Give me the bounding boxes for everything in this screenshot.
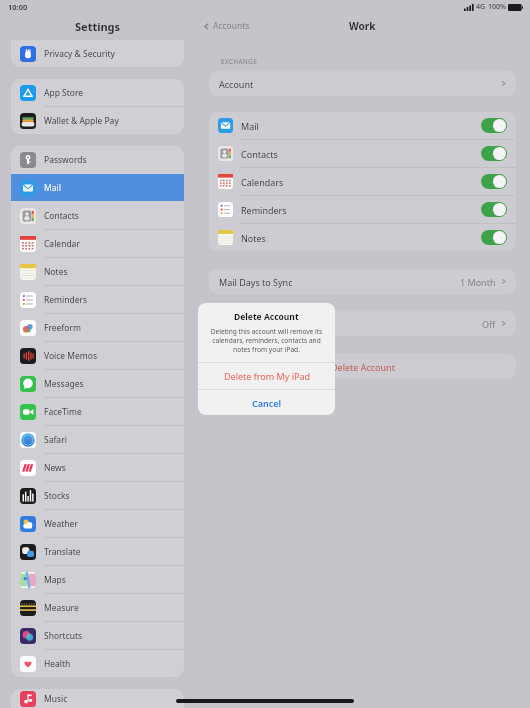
staticText: 1 Month bbox=[460, 276, 496, 288]
button[interactable]: Safari bbox=[11, 426, 184, 453]
staticText: Notes bbox=[44, 266, 68, 278]
button[interactable]: Reminders bbox=[209, 196, 516, 223]
button[interactable]: Wallet & Apple Pay bbox=[11, 107, 184, 134]
staticText: 100% bbox=[488, 2, 506, 12]
button[interactable]: Contacts bbox=[11, 202, 184, 229]
staticText: Measure bbox=[44, 602, 79, 614]
button[interactable]: Messages bbox=[11, 370, 184, 397]
button[interactable]: Stocks bbox=[11, 482, 184, 509]
button[interactable]: Contacts bbox=[209, 140, 516, 167]
button[interactable]: App Store bbox=[11, 79, 184, 106]
staticText: Delete Account bbox=[331, 361, 395, 373]
button[interactable]: Account bbox=[209, 71, 516, 96]
button[interactable]: Contacts enabled bbox=[481, 146, 507, 161]
button[interactable]: Music bbox=[11, 689, 184, 708]
button[interactable]: Delete Account bbox=[209, 354, 516, 379]
staticText: Mail bbox=[44, 182, 61, 194]
staticText: Wallet & Apple Pay bbox=[44, 115, 119, 127]
staticText: Privacy & Security bbox=[44, 48, 115, 60]
staticText: Delete from My iPad bbox=[224, 370, 310, 382]
staticText: Cancel bbox=[252, 397, 282, 409]
staticText: Calendars bbox=[241, 176, 284, 188]
staticText: Voice Memos bbox=[44, 350, 98, 362]
button[interactable]: Cancel bbox=[198, 390, 335, 415]
staticText: Mail Days to Sync bbox=[219, 276, 293, 288]
staticText: Translate bbox=[44, 546, 81, 558]
button[interactable]: Voice Memos bbox=[11, 342, 184, 369]
button[interactable]: Shortcuts bbox=[11, 622, 184, 649]
button[interactable]: Reminders enabled bbox=[481, 202, 507, 217]
staticText: Settings bbox=[75, 19, 121, 34]
staticText: Passwords bbox=[44, 154, 87, 166]
staticText: News bbox=[44, 462, 66, 474]
button[interactable]: Calendar bbox=[11, 230, 184, 257]
button[interactable]: Passwords bbox=[11, 146, 184, 173]
button[interactable]: Health bbox=[11, 650, 184, 677]
button[interactable]: Privacy & Security bbox=[11, 40, 184, 67]
button[interactable]: Weather bbox=[11, 510, 184, 537]
button[interactable]: Mail bbox=[11, 174, 184, 201]
staticText: Health bbox=[44, 658, 71, 670]
button[interactable]: Notes bbox=[11, 258, 184, 285]
button[interactable]: Notes bbox=[209, 224, 516, 251]
button[interactable]: Calendars enabled bbox=[481, 174, 507, 189]
button[interactable]: Maps bbox=[11, 566, 184, 593]
staticText: Messages bbox=[44, 378, 84, 390]
button[interactable]: FaceTime bbox=[11, 398, 184, 425]
staticText: Notes bbox=[241, 232, 266, 244]
staticText: Contacts bbox=[241, 148, 278, 160]
staticText: Automatic Reply bbox=[219, 318, 288, 330]
button[interactable]: Mail bbox=[209, 112, 516, 139]
staticText: EXCHANGE bbox=[221, 57, 258, 66]
button[interactable]: Measure bbox=[11, 594, 184, 621]
staticText: Deleting this account will remove its ca… bbox=[207, 327, 326, 354]
button[interactable]: Accounts bbox=[202, 20, 250, 32]
staticText: Accounts bbox=[213, 20, 250, 32]
button[interactable]: Mail Days to Sync bbox=[209, 269, 516, 294]
staticText: Contacts bbox=[44, 210, 79, 222]
staticText: Off bbox=[482, 318, 496, 330]
staticText: 10:00 bbox=[8, 2, 28, 12]
staticText: Reminders bbox=[241, 204, 287, 216]
staticText: Stocks bbox=[44, 490, 70, 502]
staticText: Delete Account bbox=[234, 311, 299, 323]
staticText: App Store bbox=[44, 87, 84, 99]
button[interactable]: Notes enabled bbox=[481, 230, 507, 245]
staticText: FaceTime bbox=[44, 406, 82, 418]
button[interactable]: Freeform bbox=[11, 314, 184, 341]
staticText: Safari bbox=[44, 434, 67, 446]
staticText: Reminders bbox=[44, 294, 88, 306]
staticText: Account bbox=[219, 78, 254, 90]
staticText: Music bbox=[44, 693, 68, 705]
button[interactable]: Translate bbox=[11, 538, 184, 565]
button[interactable]: Delete from My iPad bbox=[198, 363, 335, 389]
staticText: 4G bbox=[476, 2, 486, 12]
staticText: Weather bbox=[44, 518, 78, 530]
staticText: Shortcuts bbox=[44, 630, 83, 642]
staticText: Mail bbox=[241, 120, 259, 132]
staticText: Freeform bbox=[44, 322, 81, 334]
button[interactable]: Calendars bbox=[209, 168, 516, 195]
button[interactable]: Automatic Reply bbox=[209, 311, 516, 336]
staticText: Maps bbox=[44, 574, 66, 586]
button[interactable]: News bbox=[11, 454, 184, 481]
staticText: Work bbox=[349, 19, 376, 33]
button[interactable]: Mail enabled bbox=[481, 118, 507, 133]
staticText: Calendar bbox=[44, 238, 80, 250]
button[interactable]: Reminders bbox=[11, 286, 184, 313]
